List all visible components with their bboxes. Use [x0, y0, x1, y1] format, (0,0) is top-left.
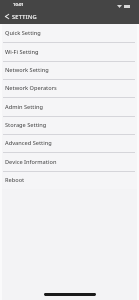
staticText: Quick Setting [5, 29, 41, 37]
button[interactable]: Wi-Fi Setting [0, 43, 139, 61]
button[interactable]: Advanced Setting [0, 134, 139, 152]
button[interactable]: Quick Setting [0, 24, 139, 42]
other: Back [5, 14, 9, 19]
staticText: Network Operators [5, 84, 57, 92]
staticText: Storage Setting [5, 121, 47, 129]
button[interactable]: Network Operators [0, 79, 139, 97]
button[interactable]: Admin Setting [0, 98, 139, 116]
staticText: Advanced Setting [5, 139, 52, 147]
staticText: 10:01 [13, 2, 24, 8]
button[interactable]: Device Information [0, 153, 139, 171]
staticText: Device Information [5, 158, 57, 166]
staticText: Network Setting [5, 66, 49, 74]
staticText: Reboot [5, 176, 25, 184]
button[interactable]: Storage Setting [0, 116, 139, 134]
button[interactable]: Back [0, 10, 139, 24]
button[interactable]: Network Setting [0, 61, 139, 79]
staticText: Wi-Fi Setting [5, 48, 39, 56]
staticText: Admin Setting [5, 103, 43, 111]
button[interactable]: Reboot [0, 171, 139, 189]
staticText: SETTING [12, 13, 37, 21]
